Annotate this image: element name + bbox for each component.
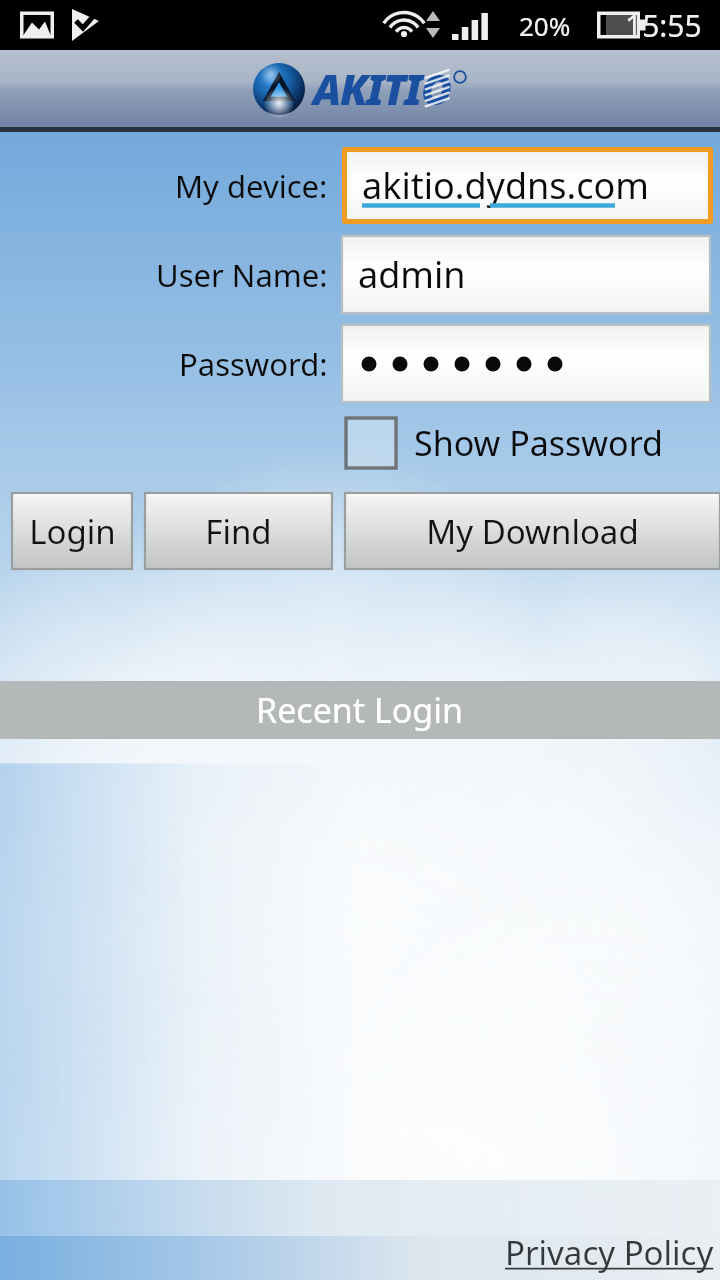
button[interactable]: Login bbox=[12, 493, 132, 569]
staticText: User Name: bbox=[156, 254, 328, 296]
staticText: Login bbox=[29, 509, 116, 554]
button[interactable]: akitio.dydns.com bbox=[347, 152, 708, 219]
staticText: 15:55 bbox=[625, 5, 702, 46]
staticText: My device: bbox=[175, 165, 328, 207]
button[interactable]: Privacy Policy bbox=[499, 1230, 720, 1275]
staticText: My Download bbox=[426, 509, 639, 554]
button[interactable]: Show Password checkbox bbox=[342, 414, 663, 472]
staticText: Show Password bbox=[414, 420, 663, 466]
staticText: AKITIO bbox=[313, 60, 451, 117]
staticText: Privacy Policy bbox=[505, 1230, 714, 1275]
button[interactable] bbox=[342, 325, 710, 402]
other: Show Password checkbox bbox=[342, 414, 400, 472]
staticText: admin bbox=[358, 250, 466, 299]
button[interactable]: My Download bbox=[345, 493, 720, 569]
staticText: Recent Login bbox=[256, 687, 464, 733]
staticText: akitio.dydns.com bbox=[362, 161, 649, 210]
button[interactable]: Find bbox=[145, 493, 332, 569]
button[interactable]: admin bbox=[342, 236, 710, 313]
staticText: 20% bbox=[519, 8, 571, 43]
button[interactable]: Recent Login bbox=[0, 681, 720, 739]
staticText: Find bbox=[205, 509, 272, 554]
staticText: Password: bbox=[179, 343, 328, 385]
